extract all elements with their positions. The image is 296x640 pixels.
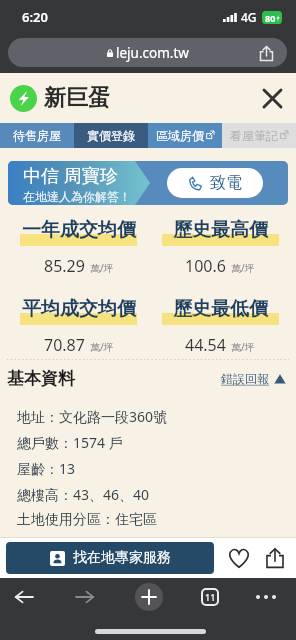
staticText: 萬/坪	[231, 340, 255, 354]
button[interactable]: Tabs	[201, 588, 219, 606]
staticText: 萬/坪	[90, 261, 114, 275]
button[interactable]: 致電	[167, 168, 263, 198]
staticText: 致電	[210, 173, 242, 193]
staticText: 地址：文化路一段360號	[17, 407, 168, 426]
staticText: 一年成交均價	[22, 218, 136, 242]
staticText: 總樓高：43、46、40	[17, 485, 150, 504]
staticText: 4G	[241, 9, 257, 25]
button[interactable]: Forward	[70, 582, 100, 612]
button[interactable]: More options	[251, 582, 281, 612]
staticText: 歷史最高價	[173, 218, 268, 242]
staticText: 區域房價	[156, 128, 204, 143]
staticText: 平均成交均價	[22, 297, 136, 321]
staticText: 中信 周寶珍	[23, 163, 118, 188]
staticText: 80	[265, 12, 276, 24]
staticText: 萬/坪	[90, 340, 114, 354]
staticText: 找在地專家服務	[73, 549, 171, 567]
staticText: 看屋筆記	[230, 128, 278, 143]
staticText: 實價登錄	[87, 128, 135, 143]
button[interactable]: 區域房價	[148, 123, 222, 148]
staticText: 錯誤回報	[221, 371, 269, 386]
button[interactable]: 看屋筆記	[222, 123, 296, 148]
button[interactable]: Share	[260, 543, 290, 573]
staticText: 新巨蛋	[44, 84, 110, 112]
staticText: 歷史最低價	[173, 297, 268, 321]
button[interactable]: 找在地專家服務	[6, 542, 214, 574]
staticText: 總戶數：1574 戶	[17, 433, 123, 452]
staticText: 100.6	[185, 255, 226, 277]
button[interactable]: 待售房屋	[0, 123, 74, 148]
staticText: 85.29	[44, 255, 85, 277]
button[interactable]: Favorite	[224, 543, 254, 573]
button[interactable]: 實價登錄	[74, 123, 148, 148]
staticText: 11	[205, 591, 216, 603]
button[interactable]: Back	[9, 582, 39, 612]
staticText: leju.com.tw	[116, 44, 189, 62]
staticText: 70.87	[44, 334, 85, 356]
staticText: 基本資料	[7, 368, 75, 389]
button[interactable]: leju.com.tw	[8, 38, 287, 67]
staticText: 6:20	[22, 8, 48, 26]
staticText: 萬/坪	[231, 261, 255, 275]
button[interactable]: 錯誤回報	[221, 371, 286, 386]
staticText: 土地使用分區：住宅區	[17, 511, 157, 529]
button[interactable]: New tab	[135, 583, 163, 611]
staticText: 44.54	[185, 334, 226, 356]
staticText: 屋齡：13	[17, 459, 76, 478]
staticText: 待售房屋	[13, 128, 61, 143]
staticText: 在地達人為你解答！	[23, 189, 131, 204]
button[interactable]: Close	[259, 85, 285, 111]
button[interactable]: 中信 周寶珍	[8, 161, 288, 205]
button[interactable]: Share page	[255, 42, 277, 64]
